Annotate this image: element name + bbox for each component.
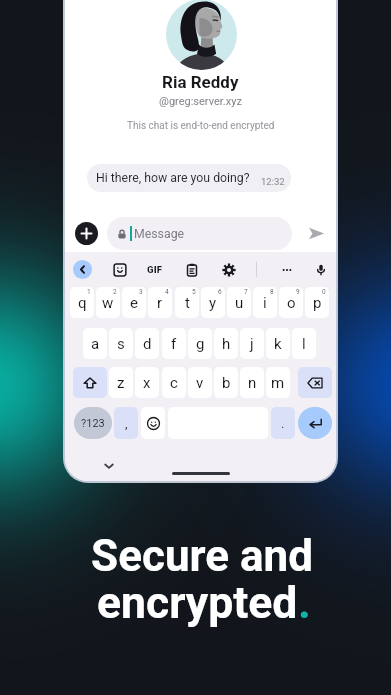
button[interactable]: Voice message — [311, 260, 330, 279]
staticText: Secure and — [91, 530, 313, 582]
staticText: t — [185, 294, 190, 312]
staticText: h — [222, 335, 231, 353]
button[interactable]: k — [266, 328, 290, 359]
button[interactable]: n — [240, 367, 264, 398]
staticText: 3 — [139, 288, 143, 296]
button[interactable]: e — [122, 287, 146, 318]
staticText: 5 — [192, 288, 196, 296]
staticText: b — [222, 374, 231, 392]
staticText: Ria Reddy — [162, 72, 239, 92]
button[interactable]: s — [109, 328, 133, 359]
staticText: q — [78, 294, 87, 312]
staticText: n — [248, 374, 257, 392]
button[interactable]: j — [240, 328, 264, 359]
button[interactable]: o — [279, 287, 303, 318]
staticText: j — [250, 335, 254, 353]
button[interactable]: Backspace — [298, 367, 332, 398]
button[interactable]: y — [201, 287, 225, 318]
button[interactable]: a — [83, 328, 107, 359]
staticText: s — [117, 335, 125, 353]
button[interactable]: c — [162, 367, 186, 398]
staticText: Message — [134, 227, 185, 241]
button[interactable]: d — [135, 328, 159, 359]
staticText: Hi there, how are you doing? — [96, 171, 250, 185]
button[interactable]: z — [109, 367, 133, 398]
staticText: u — [235, 294, 244, 312]
staticText: p — [313, 294, 322, 312]
button[interactable]: Clipboard — [182, 260, 201, 279]
button[interactable]: m — [266, 367, 290, 398]
button[interactable]: r — [148, 287, 172, 318]
button[interactable]: q — [70, 287, 94, 318]
staticText: v — [196, 374, 204, 392]
staticText: l — [302, 335, 306, 353]
button[interactable]: Settings — [219, 260, 238, 279]
button[interactable]: Emoji — [141, 407, 165, 439]
button[interactable]: l — [292, 328, 316, 359]
staticText: ?123 — [81, 417, 105, 430]
staticText: r — [157, 294, 163, 312]
staticText: y — [209, 294, 217, 312]
button[interactable]: Back — [73, 260, 92, 279]
staticText: 9 — [296, 288, 300, 296]
staticText: 12:32 — [261, 176, 285, 187]
staticText: o — [287, 294, 296, 312]
button[interactable]: GIF — [143, 260, 167, 279]
staticText: z — [117, 374, 125, 392]
staticText: g — [196, 335, 205, 353]
staticText: GIF — [147, 264, 163, 275]
staticText: . — [298, 577, 311, 629]
button[interactable]: f — [162, 328, 186, 359]
button[interactable]: i — [253, 287, 277, 318]
staticText: w — [102, 294, 114, 312]
button[interactable]: Hi there, how are you doing? — [87, 164, 291, 192]
button[interactable]: Send — [305, 222, 327, 244]
staticText: x — [143, 374, 151, 392]
staticText: 8 — [270, 288, 274, 296]
button[interactable]: . — [271, 407, 295, 439]
button[interactable]: u — [227, 287, 251, 318]
button[interactable]: Stickers — [110, 260, 129, 279]
staticText: . — [281, 416, 285, 431]
staticText: 1 — [87, 288, 91, 296]
button[interactable]: , — [114, 407, 138, 439]
button[interactable]: x — [135, 367, 159, 398]
button[interactable]: t — [175, 287, 199, 318]
staticText: 4 — [165, 288, 169, 296]
staticText: e — [130, 294, 138, 312]
staticText: d — [143, 335, 152, 353]
button[interactable]: w — [96, 287, 120, 318]
staticText: m — [271, 374, 285, 392]
staticText: k — [274, 335, 282, 353]
button[interactable]: ?123 — [74, 407, 112, 439]
button[interactable]: Enter — [298, 407, 332, 439]
button[interactable]: h — [214, 328, 238, 359]
button[interactable]: Message — [107, 217, 292, 250]
staticText: @greg:server.xyz — [159, 95, 242, 108]
staticText: 6 — [218, 288, 222, 296]
staticText: encrypted — [97, 577, 298, 629]
staticText: c — [170, 374, 178, 392]
staticText: 7 — [244, 288, 248, 296]
button[interactable]: v — [188, 367, 212, 398]
button[interactable]: Add attachment — [75, 222, 98, 245]
staticText: , — [125, 416, 128, 431]
staticText: This chat is end-to-end encrypted — [127, 120, 275, 132]
staticText: a — [91, 335, 100, 353]
button[interactable]: Shift — [73, 367, 107, 398]
staticText: f — [171, 335, 177, 353]
staticText: 2 — [113, 288, 117, 296]
staticText: i — [263, 294, 267, 312]
button[interactable]: More options — [277, 260, 296, 279]
button[interactable]: p — [305, 287, 329, 318]
staticText: 0 — [322, 288, 326, 296]
button[interactable]: Hide keyboard — [101, 458, 117, 474]
button[interactable]: g — [188, 328, 212, 359]
button[interactable]: b — [214, 367, 238, 398]
